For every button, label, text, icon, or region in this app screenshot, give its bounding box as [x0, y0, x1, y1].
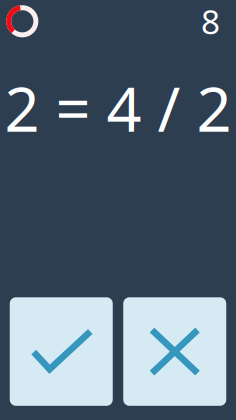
- staticText: 2 = 4 / 2: [4, 67, 231, 149]
- button[interactable]: True: [10, 297, 113, 406]
- staticText: 8: [201, 0, 220, 43]
- button[interactable]: False: [123, 297, 226, 406]
